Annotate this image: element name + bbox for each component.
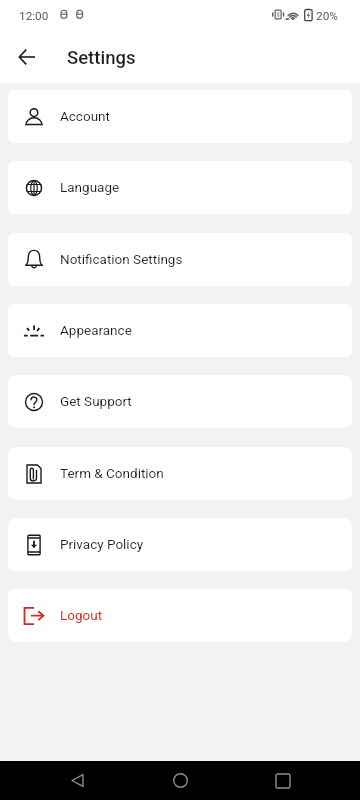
button[interactable]: Recent apps xyxy=(263,761,302,800)
staticText: Settings xyxy=(67,47,136,69)
button[interactable]: Account xyxy=(8,90,352,143)
staticText: 20% xyxy=(316,9,338,23)
button[interactable]: Appearance xyxy=(8,304,352,357)
staticText: Appearance xyxy=(60,322,132,338)
button[interactable]: Term & Condition xyxy=(8,447,352,500)
button[interactable]: Language xyxy=(8,161,352,214)
staticText: Notification Settings xyxy=(60,251,183,267)
staticText: Logout xyxy=(60,607,103,623)
button[interactable]: Back xyxy=(58,761,97,800)
button[interactable]: Notification Settings xyxy=(8,233,352,286)
button[interactable]: Back xyxy=(6,36,47,77)
staticText: Language xyxy=(60,179,120,195)
staticText: Term & Condition xyxy=(60,465,164,481)
button[interactable]: Get Support xyxy=(8,375,352,428)
button[interactable]: Home xyxy=(161,761,200,800)
staticText: Privacy Policy xyxy=(60,536,144,552)
staticText: Get Support xyxy=(60,393,132,409)
staticText: Account xyxy=(60,108,110,124)
staticText: 12:00 xyxy=(19,9,49,23)
button[interactable]: Privacy Policy xyxy=(8,518,352,571)
button[interactable]: Logout xyxy=(8,589,352,642)
